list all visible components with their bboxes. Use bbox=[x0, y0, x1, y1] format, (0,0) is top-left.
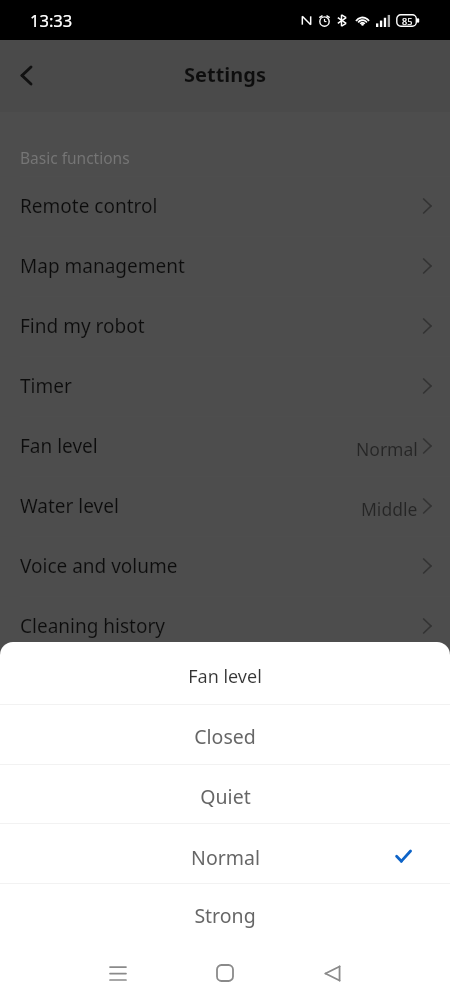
button[interactable]: Back bbox=[2, 51, 50, 99]
button[interactable]: Back bbox=[304, 945, 360, 1000]
staticText: Middle bbox=[361, 497, 418, 521]
button[interactable]: Timer bbox=[0, 356, 450, 416]
button[interactable]: Strong bbox=[0, 883, 450, 942]
button[interactable]: Map management bbox=[0, 236, 450, 296]
staticText: Normal bbox=[191, 844, 260, 871]
staticText: Normal bbox=[356, 437, 418, 461]
staticText: Water level bbox=[20, 493, 119, 519]
staticText: 85 bbox=[402, 15, 413, 27]
button[interactable]: Recent apps bbox=[90, 945, 146, 1000]
staticText: Cleaning history bbox=[20, 613, 165, 639]
button[interactable]: Quiet bbox=[0, 764, 450, 823]
staticText: Quiet bbox=[200, 783, 251, 810]
staticText: Fan level bbox=[188, 664, 262, 689]
staticText: Voice and volume bbox=[20, 553, 178, 579]
staticText: Settings bbox=[184, 61, 266, 88]
staticText: Strong bbox=[194, 902, 256, 929]
button[interactable]: Closed bbox=[0, 704, 450, 764]
staticText: Timer bbox=[20, 373, 72, 399]
button[interactable]: Remote control bbox=[0, 176, 450, 236]
staticText: 13:33 bbox=[30, 9, 73, 31]
button[interactable]: Home bbox=[197, 945, 253, 1000]
button[interactable]: Cleaning history bbox=[0, 596, 450, 656]
button[interactable]: Find my robot bbox=[0, 296, 450, 356]
button[interactable]: Fan level bbox=[0, 416, 450, 476]
staticText: Find my robot bbox=[20, 313, 145, 339]
staticText: Map management bbox=[20, 253, 185, 279]
staticText: Basic functions bbox=[20, 147, 130, 168]
button[interactable]: Voice and volume bbox=[0, 536, 450, 596]
staticText: Fan level bbox=[20, 433, 98, 459]
button[interactable]: Water level bbox=[0, 476, 450, 536]
staticText: Remote control bbox=[20, 193, 158, 219]
other: Selected bbox=[396, 850, 411, 862]
button[interactable]: Normal bbox=[0, 823, 450, 883]
staticText: Closed bbox=[194, 723, 256, 750]
button[interactable]: Fan level bbox=[0, 644, 450, 704]
